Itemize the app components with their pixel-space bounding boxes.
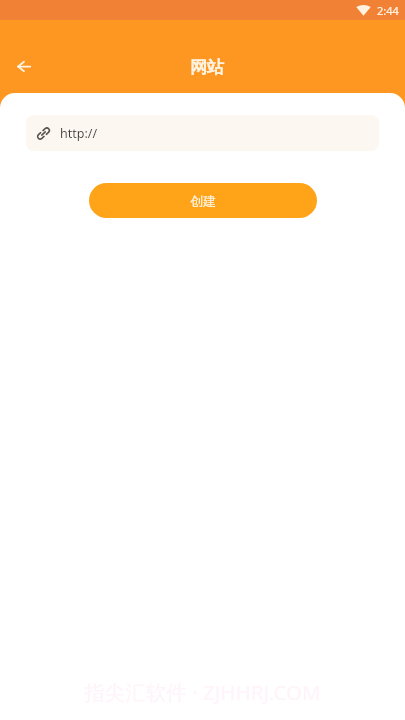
staticText: 网站	[190, 57, 224, 78]
staticText: 2:44	[377, 3, 399, 18]
button[interactable]: Back	[4, 46, 44, 86]
staticText: 指尖汇软件 · ZJHHRJ.COM	[84, 678, 321, 706]
button[interactable]: http://	[26, 115, 379, 151]
staticText: 创建	[190, 193, 216, 209]
button[interactable]: 创建	[89, 183, 317, 218]
staticText: http://	[60, 125, 98, 142]
